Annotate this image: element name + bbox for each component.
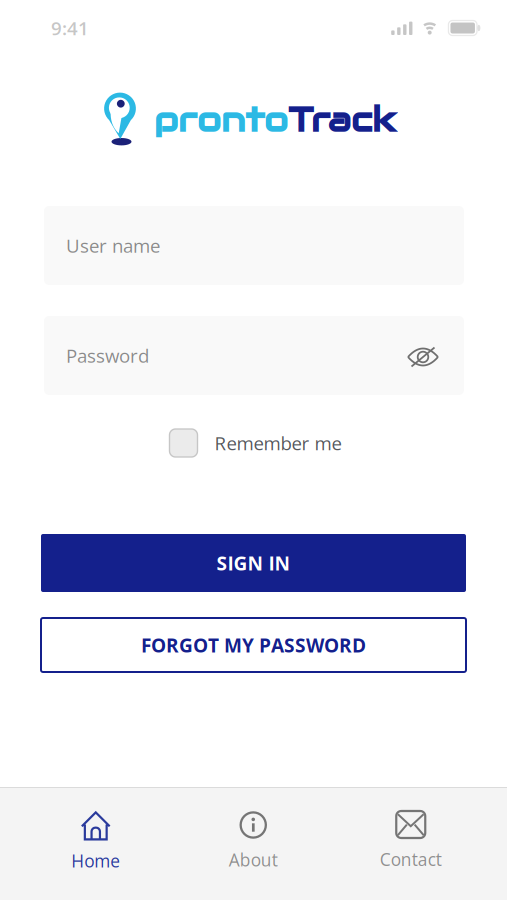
button[interactable]: Remember me	[169, 429, 341, 457]
staticText: 9:41	[51, 15, 89, 41]
staticText: About	[229, 848, 278, 872]
staticText: pronto	[154, 97, 288, 142]
staticText: FORGOT MY PASSWORD	[141, 632, 366, 658]
button[interactable]: User name	[44, 206, 464, 285]
staticText: Password	[66, 343, 149, 368]
button[interactable]: Home	[17, 811, 174, 899]
button[interactable]: Show password	[399, 338, 446, 375]
staticText: User name	[66, 233, 160, 258]
button[interactable]: SIGN IN	[41, 534, 466, 592]
staticText: Contact	[380, 847, 442, 871]
button[interactable]: About	[174, 811, 332, 899]
button[interactable]: FORGOT MY PASSWORD	[41, 618, 466, 672]
staticText: SIGN IN	[216, 550, 290, 576]
staticText: Track	[288, 97, 396, 142]
staticText: Remember me	[214, 430, 341, 456]
button[interactable]: Password	[44, 316, 464, 395]
staticText: Home	[71, 849, 120, 873]
button[interactable]: Contact	[332, 811, 489, 899]
